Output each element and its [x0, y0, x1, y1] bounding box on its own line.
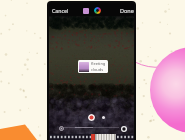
- button[interactable]: Settings: [59, 126, 64, 131]
- staticText: Done: [120, 7, 134, 14]
- button[interactable]: Timeline: [49, 134, 134, 140]
- button[interactable]: Cancel: [50, 5, 71, 16]
- staticText: Cancel: [52, 7, 69, 14]
- staticText: fleeting: [91, 61, 106, 66]
- button[interactable]: Done: [118, 5, 134, 16]
- button[interactable]: Marker: [102, 116, 105, 119]
- button[interactable]: Record: [88, 114, 95, 121]
- button[interactable]: Sticker: [83, 8, 89, 14]
- button[interactable]: Color picker: [94, 7, 101, 14]
- staticText: clouds: [91, 67, 104, 72]
- button[interactable]: fleeting: [78, 60, 108, 73]
- button[interactable]: Camera: [121, 126, 127, 132]
